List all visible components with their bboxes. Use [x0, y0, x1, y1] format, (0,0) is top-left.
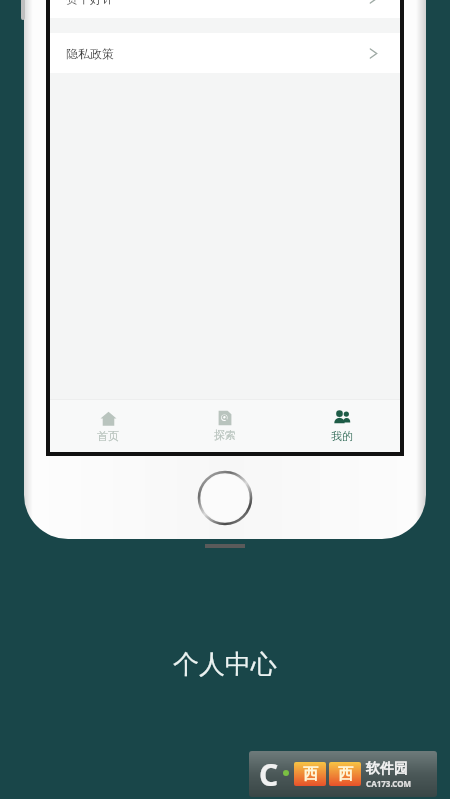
button[interactable]: 隐私政策: [50, 33, 400, 73]
button[interactable]: 我的: [283, 400, 400, 452]
button[interactable]: 赞个好评: [50, 0, 400, 18]
button[interactable]: 探索: [166, 400, 283, 452]
staticText: 个人中心: [173, 648, 277, 681]
staticText: 赞个好评: [66, 0, 114, 6]
staticText: 西: [338, 765, 353, 784]
staticText: 我的: [331, 429, 353, 443]
staticText: 首页: [97, 429, 119, 443]
staticText: 软件园: [366, 760, 408, 778]
staticText: 探索: [214, 428, 236, 442]
staticText: 隐私政策: [66, 46, 114, 61]
button[interactable]: 首页: [50, 400, 166, 452]
staticText: 西: [303, 765, 318, 784]
staticText: CA173.COM: [366, 778, 412, 789]
staticText: C: [259, 754, 279, 795]
